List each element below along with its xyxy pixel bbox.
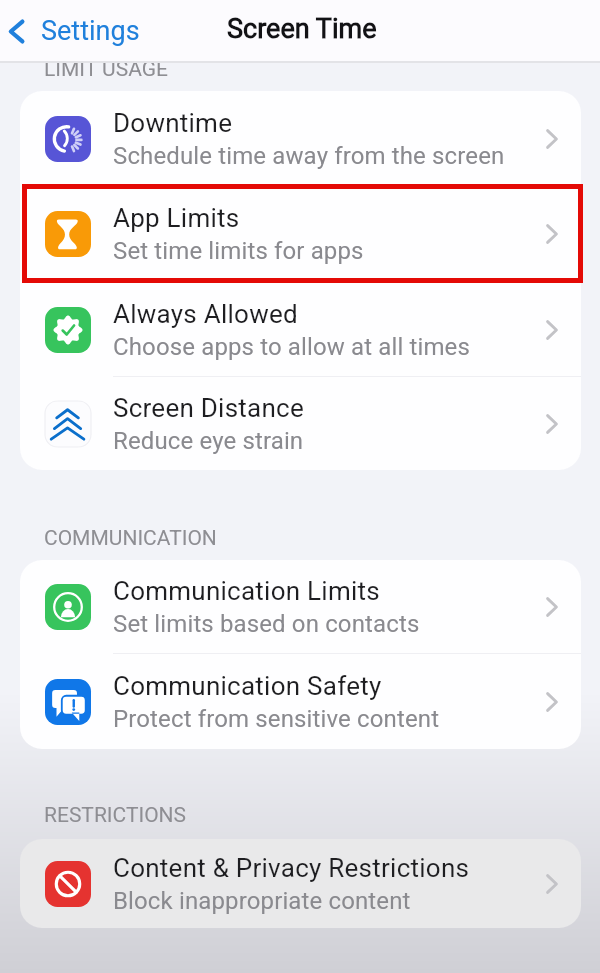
button[interactable]: Always Allowed bbox=[20, 282, 581, 377]
button[interactable]: Content & Privacy Restrictions bbox=[20, 839, 581, 928]
staticText: Communication Safety bbox=[113, 671, 382, 701]
staticText: Set limits based on contacts bbox=[113, 610, 420, 638]
button[interactable]: Screen Distance bbox=[20, 377, 581, 470]
staticText: Block inappropriate content bbox=[113, 887, 411, 915]
staticText: Protect from sensitive content bbox=[113, 705, 440, 733]
button[interactable]: Downtime bbox=[20, 91, 581, 186]
staticText: Communication Limits bbox=[113, 576, 380, 606]
staticText: Always Allowed bbox=[113, 299, 298, 329]
staticText: Content & Privacy Restrictions bbox=[113, 853, 470, 883]
staticText: Reduce eye strain bbox=[113, 427, 304, 455]
staticText: Set time limits for apps bbox=[113, 237, 364, 265]
button[interactable]: Communication Safety bbox=[20, 654, 581, 749]
button[interactable]: App Limits bbox=[20, 186, 581, 282]
staticText: COMMUNICATION bbox=[44, 526, 217, 551]
staticText: LIMIT USAGE bbox=[44, 57, 169, 82]
button[interactable]: Communication Limits bbox=[20, 560, 581, 654]
staticText: RESTRICTIONS bbox=[44, 803, 187, 828]
staticText: App Limits bbox=[113, 203, 240, 233]
staticText: Screen Distance bbox=[113, 393, 304, 423]
staticText: Schedule time away from the screen bbox=[113, 142, 505, 170]
button[interactable]: Back to Settings bbox=[0, 9, 150, 53]
staticText: Settings bbox=[41, 15, 140, 47]
staticText: Downtime bbox=[113, 108, 233, 138]
other: Back to Settings bbox=[9, 20, 24, 43]
staticText: Choose apps to allow at all times bbox=[113, 333, 470, 361]
staticText: Screen Time bbox=[227, 13, 377, 45]
